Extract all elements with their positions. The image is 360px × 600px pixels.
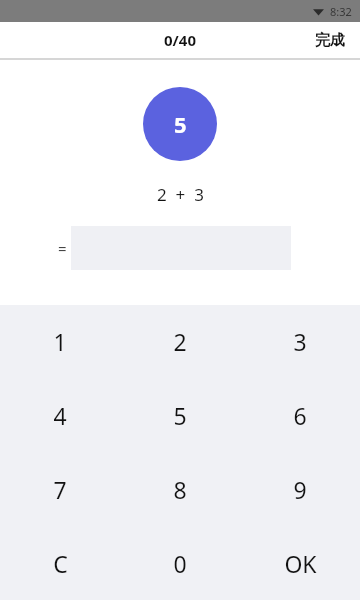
staticText: 6	[293, 400, 307, 431]
staticText: 0/40	[164, 30, 196, 50]
button[interactable]: 完成	[300, 25, 360, 56]
button[interactable]: 2	[120, 305, 240, 378]
staticText: 2	[173, 326, 187, 357]
staticText: =	[58, 238, 67, 258]
staticText: 完成	[315, 31, 345, 50]
button[interactable]: OK	[240, 526, 360, 600]
staticText: 1	[53, 326, 67, 357]
staticText: 5	[173, 400, 187, 431]
button[interactable]: 9	[240, 452, 360, 526]
staticText: 8:32	[330, 4, 352, 19]
button[interactable]: 0	[120, 526, 240, 600]
staticText: 0	[173, 548, 187, 579]
staticText: 8	[173, 474, 187, 505]
button[interactable]: 3	[240, 305, 360, 378]
button[interactable]: 6	[240, 378, 360, 452]
staticText: 3	[293, 326, 307, 357]
staticText: 7	[53, 474, 67, 505]
staticText: 4	[53, 400, 67, 431]
button[interactable]: 7	[0, 452, 120, 526]
staticText: C	[53, 548, 68, 579]
staticText: OK	[284, 548, 317, 579]
button[interactable]: C	[0, 526, 120, 600]
staticText: 9	[293, 474, 307, 505]
staticText: 5	[174, 109, 187, 139]
button[interactable]: 1	[0, 305, 120, 378]
staticText: 2 + 3	[157, 183, 204, 206]
button[interactable]: 8	[120, 452, 240, 526]
button[interactable]: 5	[120, 378, 240, 452]
button[interactable]: 4	[0, 378, 120, 452]
